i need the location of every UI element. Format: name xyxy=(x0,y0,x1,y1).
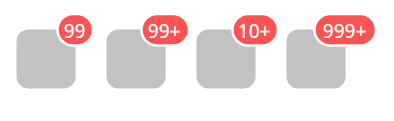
button[interactable]: Inbox, 99+ unread xyxy=(106,29,165,88)
button[interactable]: Inbox, 99 unread xyxy=(16,29,75,88)
staticText: 10+ xyxy=(238,18,271,44)
button[interactable]: Inbox, 10+ unread xyxy=(196,29,255,88)
button[interactable]: Inbox, 999+ unread xyxy=(286,29,345,88)
staticText: 999+ xyxy=(323,18,367,44)
staticText: 99 xyxy=(64,18,86,44)
staticText: 99+ xyxy=(148,18,181,44)
